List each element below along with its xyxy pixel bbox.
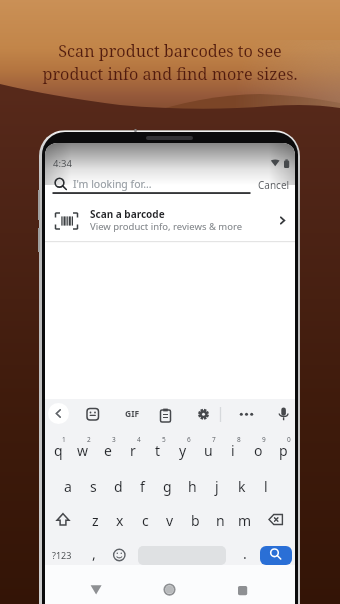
staticText: 0 [287,435,291,444]
button[interactable]: m [234,508,256,532]
button[interactable]: t [147,438,169,462]
button[interactable] [260,546,292,565]
staticText: View product info, reviews & more [90,220,243,233]
staticText: a [64,477,72,496]
button[interactable]: p [272,438,294,462]
staticText: u [204,441,213,460]
staticText: Cancel [258,178,290,192]
button[interactable]: h [181,474,203,498]
staticText: k [238,477,246,496]
staticText: m [238,511,252,530]
button[interactable]: o [247,438,269,462]
staticText: d [114,477,123,496]
staticText: n [216,511,225,530]
staticText: . [243,544,247,563]
staticText: l [264,477,268,496]
button[interactable]: g [156,474,178,498]
button[interactable] [47,543,79,566]
staticText: e [104,441,112,460]
staticText: p [279,441,288,460]
staticText: c [142,511,149,530]
staticText: 4 [137,435,141,444]
button[interactable]: f [131,474,153,498]
button[interactable]: y [172,438,194,462]
button[interactable]: c [134,508,156,532]
button[interactable] [108,543,130,566]
staticText: v [166,511,174,530]
staticText: 2 [87,435,91,444]
staticText: 6 [187,435,191,444]
staticText: product info and find more sizes. [0,63,340,85]
staticText: b [191,511,200,530]
button[interactable]: i [222,438,244,462]
button[interactable]: n [209,508,231,532]
button[interactable] [83,405,102,424]
staticText: s [90,477,97,496]
staticText: 4:34 [53,157,72,170]
staticText: z [92,511,99,530]
button[interactable]: , [83,541,105,565]
button[interactable] [237,405,256,424]
staticText: w [77,441,89,460]
button[interactable]: k [231,474,253,498]
staticText: 5 [162,435,166,444]
staticText: r [130,441,136,460]
staticText: 8 [237,435,241,444]
button[interactable]: d [107,474,129,498]
button[interactable]: r [122,438,144,462]
staticText: 9 [262,435,266,444]
button[interactable] [48,403,69,424]
button[interactable]: j [206,474,228,498]
button[interactable]: q [47,438,69,462]
button[interactable] [194,405,213,424]
button[interactable] [274,405,293,424]
button[interactable]: w [72,438,94,462]
button[interactable] [122,405,141,424]
staticText: ?123 [52,549,72,561]
staticText: y [179,441,187,460]
staticText: h [188,477,197,496]
staticText: j [215,477,219,496]
staticText: o [254,441,263,460]
staticText: g [163,477,172,496]
button[interactable]: s [82,474,104,498]
button[interactable] [232,579,252,599]
staticText: Scan product barcodes to see [0,40,340,62]
staticText: , [92,544,96,563]
button[interactable]: z [84,508,106,532]
staticText: q [54,441,63,460]
button[interactable] [50,508,76,531]
button[interactable]: v [159,508,181,532]
staticText: 1 [62,435,66,444]
button[interactable]: a [57,474,79,498]
staticText: I'm looking for... [73,177,152,191]
staticText: 3 [112,435,116,444]
button[interactable] [45,205,295,241]
staticText: x [116,511,124,530]
staticText: 7 [212,435,216,444]
button[interactable] [263,508,289,531]
button[interactable]: b [184,508,206,532]
button[interactable]: l [255,474,277,498]
button[interactable] [156,405,175,424]
staticText: Scan a barcode [90,207,165,221]
button[interactable]: . [234,541,256,565]
button[interactable] [86,579,106,599]
button[interactable] [159,579,179,599]
staticText: i [231,441,235,460]
staticText: f [140,477,145,496]
staticText: GIF [125,408,140,420]
staticText: t [155,441,161,460]
button[interactable]: e [97,438,119,462]
button[interactable]: u [197,438,219,462]
button[interactable]: x [109,508,131,532]
button[interactable] [45,171,295,195]
